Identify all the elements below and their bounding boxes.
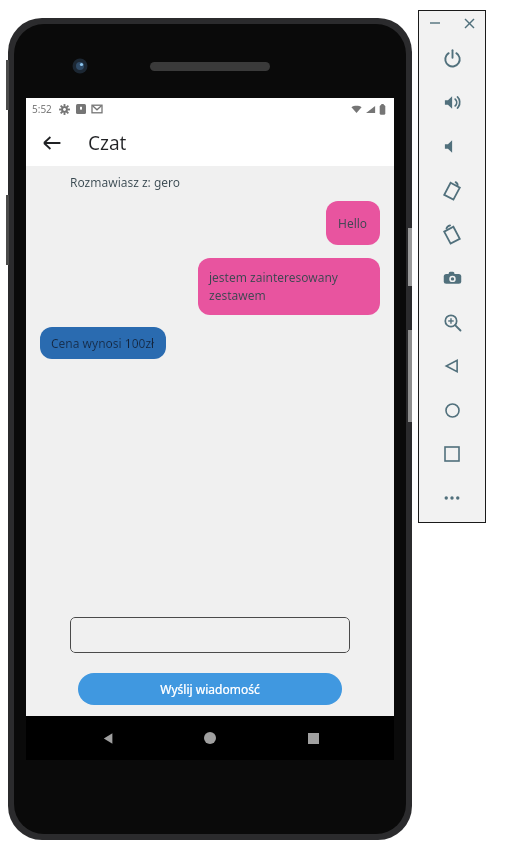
button[interactable]: Cena wynosi 100zł [40, 327, 166, 359]
button[interactable]: Wyślij wiadomość [78, 673, 342, 705]
staticText: 5:52 [32, 102, 52, 116]
button[interactable]: Screenshot [418, 256, 486, 300]
button[interactable]: Recent apps [292, 717, 334, 759]
button[interactable]: Volume down [418, 124, 486, 168]
button[interactable]: Message input field [70, 617, 350, 653]
button[interactable]: Rotate left [418, 168, 486, 212]
button[interactable]: Zoom [418, 300, 486, 344]
button[interactable]: Hello [326, 201, 380, 245]
button[interactable]: Home [189, 717, 231, 759]
staticText: Cena wynosi 100zł [51, 335, 155, 351]
button[interactable]: Back [418, 344, 486, 388]
button[interactable]: Minimize [425, 13, 445, 33]
staticText: Hello [338, 215, 368, 231]
staticText: Czat [88, 130, 127, 156]
button[interactable]: Volume up [418, 80, 486, 124]
button[interactable]: Home [418, 388, 486, 432]
button[interactable]: jestem zainteresowany zestawem [198, 258, 380, 315]
staticText: jestem zainteresowany zestawem [209, 269, 369, 304]
button[interactable]: Rotate right [418, 212, 486, 256]
button[interactable]: More [418, 476, 486, 520]
button[interactable]: Back [34, 125, 70, 161]
button[interactable]: Power [418, 36, 486, 80]
button[interactable]: Close [459, 13, 479, 33]
staticText: Wyślij wiadomość [160, 681, 260, 697]
staticText: Rozmawiasz z: gero [70, 174, 181, 190]
button[interactable]: Overview [418, 432, 486, 476]
button[interactable]: Back [87, 717, 129, 759]
